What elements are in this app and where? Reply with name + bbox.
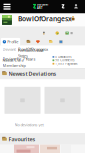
button[interactable]: Search	[59, 1, 67, 11]
staticText: Deviant for 7 Years	[2, 56, 35, 62]
staticText: 1,883 Pageviews	[55, 62, 77, 65]
button[interactable]: More	[70, 31, 73, 35]
staticText: 98 Comments	[55, 58, 74, 62]
staticText: Deviant	[2, 47, 15, 52]
staticText: Newest Deviations	[9, 70, 57, 77]
staticText: 0 Deviations	[55, 55, 71, 59]
staticText: BowlOfOrangesx	[18, 47, 48, 52]
button[interactable]: Llama badge	[69, 14, 76, 22]
button[interactable]: Favourites	[35, 39, 40, 44]
staticText: No deviations yet	[14, 122, 43, 127]
button[interactable]: Posts	[48, 39, 53, 44]
button[interactable]: Gallery	[26, 39, 31, 44]
button[interactable]: Profile	[1, 38, 20, 46]
button[interactable]: Menu	[0, 0, 13, 13]
button[interactable]: Groups	[65, 31, 70, 36]
button[interactable]: Shop	[55, 31, 60, 36]
button[interactable]: Watch	[41, 31, 46, 35]
staticText: Needs Core Membership	[2, 57, 25, 68]
button[interactable]: Account	[71, 1, 80, 11]
staticText: Female/United States	[18, 48, 43, 58]
staticText: ART	[37, 6, 43, 10]
staticText: Favourites	[9, 136, 36, 143]
staticText: BowlOfOrangesx	[18, 14, 72, 23]
staticText: Profile	[7, 39, 18, 44]
staticText: DEVIANT	[37, 3, 49, 6]
button[interactable]: Badges	[58, 39, 63, 44]
